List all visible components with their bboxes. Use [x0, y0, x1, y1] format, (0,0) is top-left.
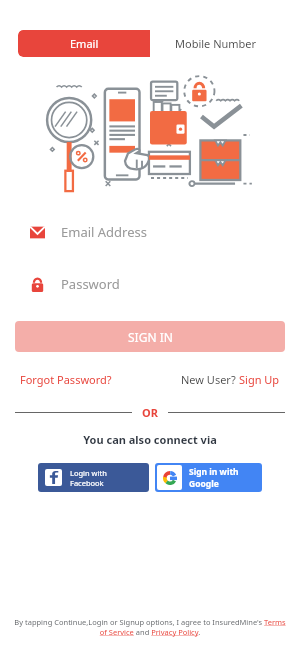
staticText: Sign Up — [239, 372, 280, 387]
staticText: Password — [61, 275, 120, 293]
staticText: SIGN IN — [128, 329, 173, 345]
staticText: New User? — [181, 372, 239, 387]
button[interactable]: Sign in with Google — [155, 463, 262, 492]
staticText: Email — [70, 36, 99, 51]
staticText: Email Address — [61, 223, 147, 241]
staticText: OR — [142, 405, 158, 420]
button[interactable]: Sign Up — [239, 372, 280, 387]
staticText: Login with Facebook — [70, 468, 142, 488]
button[interactable]: SIGN IN — [15, 321, 285, 352]
staticText: Mobile Number — [175, 36, 257, 51]
button[interactable]: Email Address — [30, 217, 270, 247]
staticText: By tapping Continue,Login or Signup opti… — [10, 617, 290, 637]
button[interactable]: Login with Facebook — [38, 463, 149, 492]
staticText: Sign in with Google — [189, 466, 260, 490]
button[interactable]: Forgot Password? — [20, 372, 112, 387]
button[interactable]: Email — [18, 30, 150, 57]
staticText: You can also connect via — [0, 432, 300, 447]
button[interactable]: Password — [30, 269, 270, 299]
button[interactable]: Mobile Number — [150, 30, 282, 57]
staticText: Forgot Password? — [20, 372, 112, 387]
